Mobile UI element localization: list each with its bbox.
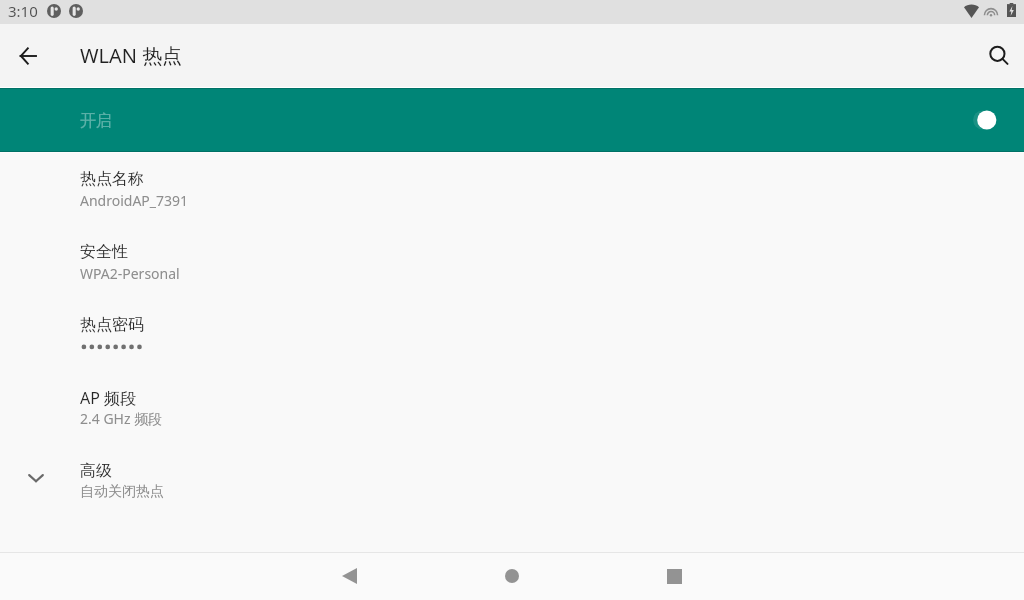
button[interactable]: Home bbox=[452, 552, 572, 600]
staticText: 热点密码 bbox=[80, 315, 144, 335]
staticText: 开启 bbox=[80, 111, 112, 131]
button[interactable]: Back bbox=[289, 552, 409, 600]
staticText: 高级 bbox=[80, 461, 112, 481]
button[interactable]: 安全性 bbox=[0, 226, 1024, 299]
button[interactable]: Back bbox=[4, 32, 52, 80]
staticText: WLAN 热点 bbox=[80, 42, 183, 69]
staticText: 热点名称 bbox=[80, 169, 144, 189]
button[interactable]: 高级 bbox=[0, 445, 1024, 518]
staticText: AndroidAP_7391 bbox=[80, 191, 189, 210]
staticText: AP 频段 bbox=[80, 387, 137, 409]
button[interactable]: 热点密码 bbox=[0, 299, 1024, 372]
staticText: 2.4 GHz 频段 bbox=[80, 409, 163, 428]
button[interactable]: 热点名称 bbox=[0, 153, 1024, 226]
button[interactable]: Recents bbox=[614, 552, 734, 600]
staticText: WPA2-Personal bbox=[80, 264, 180, 283]
staticText: 自动关闭热点 bbox=[80, 483, 164, 501]
button[interactable] bbox=[0, 88, 1024, 152]
staticText: 安全性 bbox=[80, 242, 128, 262]
staticText: 3:10 bbox=[8, 1, 38, 21]
button[interactable]: AP 频段 bbox=[0, 371, 1024, 444]
button[interactable]: Search bbox=[975, 33, 1023, 81]
